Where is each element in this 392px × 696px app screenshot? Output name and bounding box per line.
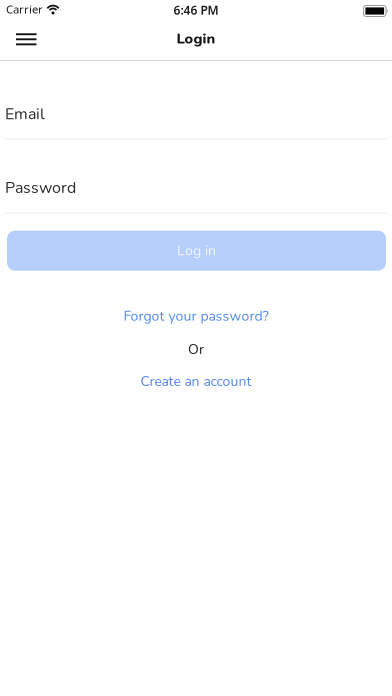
- staticText: 6:46 PM: [173, 2, 218, 18]
- button[interactable]: Forgot your password?: [123, 307, 268, 326]
- staticText: Forgot your password?: [123, 307, 268, 326]
- staticText: Carrier: [6, 1, 43, 17]
- button[interactable]: Email: [5, 103, 387, 140]
- staticText: Password: [5, 177, 76, 199]
- staticText: Email: [5, 103, 45, 125]
- staticText: Create an account: [140, 372, 251, 391]
- staticText: Or: [188, 340, 204, 359]
- button[interactable]: Password: [5, 177, 387, 214]
- button[interactable]: Menu: [0, 25, 46, 57]
- staticText: Login: [176, 29, 215, 49]
- button[interactable]: Create an account: [140, 372, 251, 391]
- button[interactable]: Log in: [5, 231, 387, 271]
- staticText: Log in: [177, 241, 216, 260]
